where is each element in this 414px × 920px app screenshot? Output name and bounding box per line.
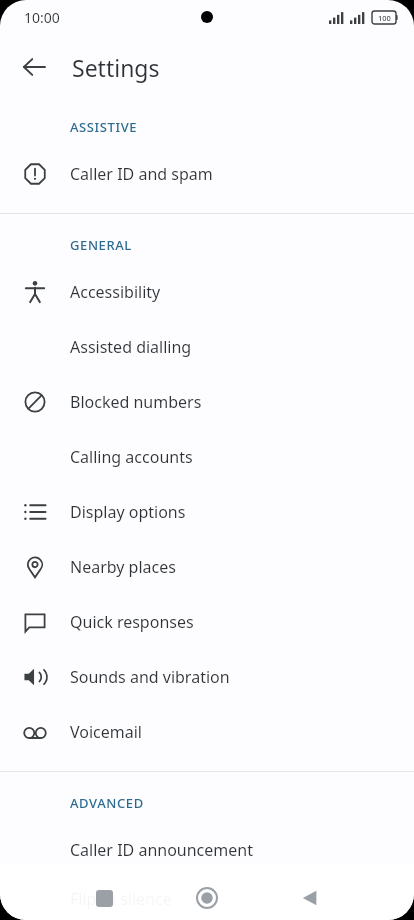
button[interactable]: Caller ID and spam [0,146,414,201]
button[interactable]: Flip to silence [0,877,414,920]
staticText: Calling accounts [70,446,193,468]
staticText: Flip to silence [70,888,172,910]
staticText: Nearby places [70,556,176,578]
staticText: Caller ID announcement [70,839,253,861]
staticText: 100 [378,13,391,23]
staticText: GENERAL [70,236,132,254]
button[interactable]: Accessibility [0,264,414,319]
staticText: 10:00 [24,8,60,27]
staticText: Display options [70,501,186,523]
button[interactable]: Assisted dialling [0,319,414,374]
button[interactable]: Recents [96,890,113,907]
button[interactable]: Nearby places [0,539,414,594]
staticText: Voicemail [70,721,142,743]
staticText: Blocked numbers [70,391,202,413]
staticText: Accessibility [70,281,161,303]
button[interactable]: Blocked numbers [0,374,414,429]
staticText: Sounds and vibration [70,666,230,688]
staticText: Assisted dialling [70,336,192,358]
button[interactable]: Display options [0,484,414,539]
button[interactable]: Caller ID announcement [0,822,414,877]
button[interactable]: Quick responses [0,594,414,649]
staticText: ASSISTIVE [70,118,138,136]
button[interactable]: Back [10,43,58,91]
button[interactable]: Sounds and vibration [0,649,414,704]
staticText: Settings [72,52,160,83]
button[interactable]: Calling accounts [0,429,414,484]
staticText: Quick responses [70,611,194,633]
staticText: Caller ID and spam [70,163,213,185]
button[interactable]: Voicemail [0,704,414,759]
button[interactable]: Home [196,887,218,909]
staticText: ADVANCED [70,794,144,812]
button[interactable]: Back [300,888,320,908]
